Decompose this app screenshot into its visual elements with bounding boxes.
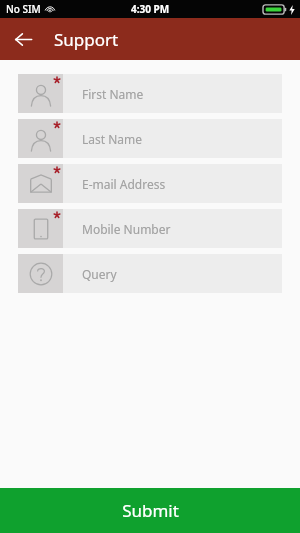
button[interactable]: First Name (18, 74, 282, 113)
button[interactable]: Submit (0, 488, 300, 533)
staticText: Support (54, 28, 119, 51)
button[interactable]: E-mail Address (18, 164, 282, 203)
staticText: E-mail Address (82, 176, 166, 192)
staticText: Mobile Number (82, 221, 171, 237)
button[interactable]: Mobile Number (18, 209, 282, 248)
button[interactable]: Last Name (18, 119, 282, 158)
staticText: 4:30 PM (131, 2, 170, 16)
staticText: Last Name (82, 131, 143, 147)
staticText: Submit (122, 499, 179, 522)
staticText: Query (82, 266, 117, 282)
staticText: No SIM (6, 2, 41, 16)
button[interactable]: Query (18, 254, 282, 293)
button[interactable]: Back (6, 22, 40, 56)
staticText: First Name (82, 86, 144, 102)
